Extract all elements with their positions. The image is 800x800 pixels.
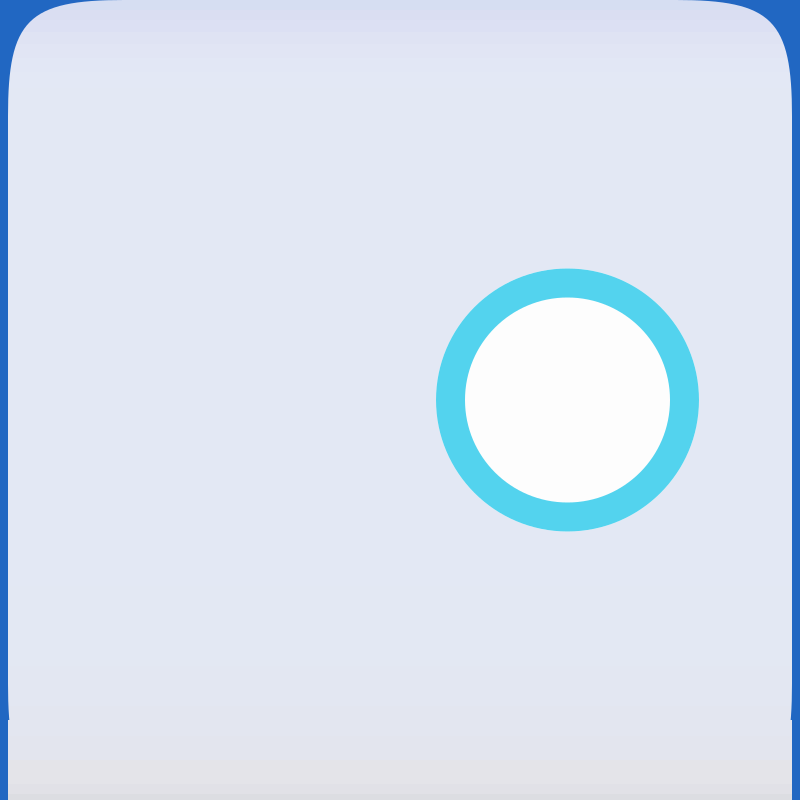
button[interactable]: Record	[436, 268, 699, 531]
